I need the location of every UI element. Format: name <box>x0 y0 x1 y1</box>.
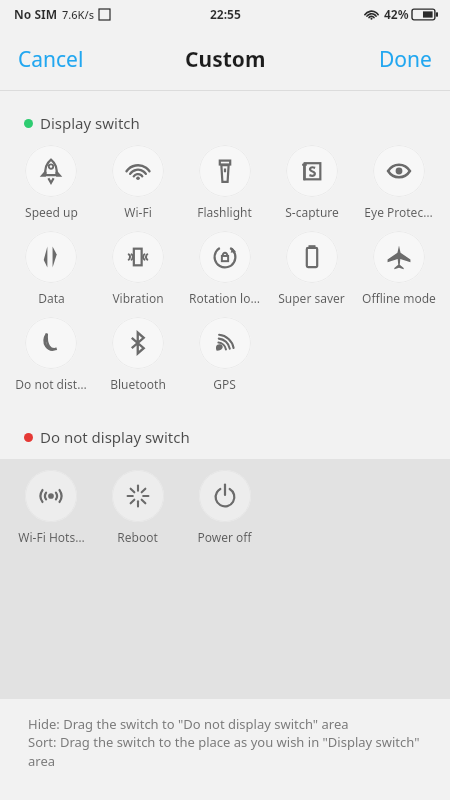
button[interactable]: Flashlight <box>181 145 268 220</box>
staticText: 22:55 <box>210 6 241 22</box>
staticText: Custom <box>185 45 266 74</box>
button[interactable]: Wi-Fi <box>94 145 181 220</box>
staticText: 7.6K/s <box>62 7 95 22</box>
staticText: Sort: Drag the switch to the place as yo… <box>28 733 422 770</box>
staticText: Reboot <box>117 529 158 545</box>
button[interactable]: Do not dist… <box>8 317 94 392</box>
staticText: Power off <box>197 529 252 545</box>
staticText: Speed up <box>25 204 78 220</box>
staticText: Rotation lo… <box>189 290 260 306</box>
staticText: Hide: Drag the switch to "Do not display… <box>28 715 349 733</box>
button[interactable]: Data <box>8 231 94 306</box>
staticText: No SIM <box>14 6 57 22</box>
staticText: S-capture <box>285 204 339 220</box>
staticText: Done <box>379 45 432 74</box>
staticText: Eye Protec… <box>364 204 433 220</box>
staticText: Offline mode <box>362 290 436 306</box>
button[interactable]: Done <box>361 33 450 86</box>
staticText: Vibration <box>112 290 164 306</box>
staticText: Cancel <box>18 45 84 74</box>
staticText: Do not display switch <box>40 427 190 447</box>
button[interactable]: Reboot <box>94 470 181 545</box>
button[interactable]: Eye Protec… <box>355 145 442 220</box>
staticText: Bluetooth <box>110 376 166 392</box>
staticText: 42% <box>384 6 409 22</box>
staticText: Do not dist… <box>15 376 87 392</box>
button[interactable]: Wi-Fi Hots… <box>8 470 94 545</box>
button[interactable]: Rotation lo… <box>181 231 268 306</box>
button[interactable]: Power off <box>181 470 268 545</box>
button[interactable]: Offline mode <box>355 231 442 306</box>
staticText: Wi-Fi Hots… <box>18 529 85 545</box>
staticText: Data <box>38 290 65 306</box>
button[interactable]: Bluetooth <box>94 317 181 392</box>
staticText: Flashlight <box>197 204 252 220</box>
button[interactable]: Vibration <box>94 231 181 306</box>
staticText: Wi-Fi <box>124 204 152 220</box>
staticText: Display switch <box>40 113 140 133</box>
button[interactable]: Super saver <box>268 231 355 306</box>
staticText: Super saver <box>278 290 345 306</box>
staticText: GPS <box>213 376 236 392</box>
button[interactable]: Cancel <box>0 33 102 86</box>
button[interactable]: Speed up <box>8 145 94 220</box>
button[interactable]: GPS <box>181 317 268 392</box>
button[interactable]: S-capture <box>268 145 355 220</box>
